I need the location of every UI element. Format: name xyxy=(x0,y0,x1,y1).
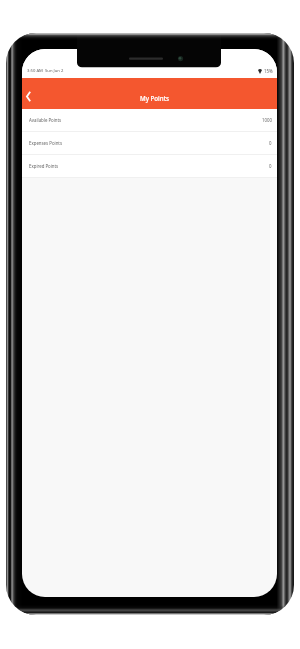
staticText: 0 xyxy=(269,140,272,146)
button[interactable]: Expenses Points xyxy=(22,132,277,154)
staticText: Expired Points xyxy=(29,163,59,169)
staticText: 0 xyxy=(269,163,272,169)
button[interactable]: Back xyxy=(22,87,35,105)
staticText: 15% xyxy=(264,68,273,74)
staticText: 1000 xyxy=(262,117,272,123)
button[interactable]: Available Points xyxy=(22,109,277,131)
staticText: 3:50 AM Sun Jun 2 xyxy=(27,68,64,74)
staticText: Expenses Points xyxy=(29,140,62,146)
staticText: Available Points xyxy=(29,117,62,123)
button[interactable]: Expired Points xyxy=(22,155,277,177)
staticText: My Points xyxy=(140,94,170,102)
